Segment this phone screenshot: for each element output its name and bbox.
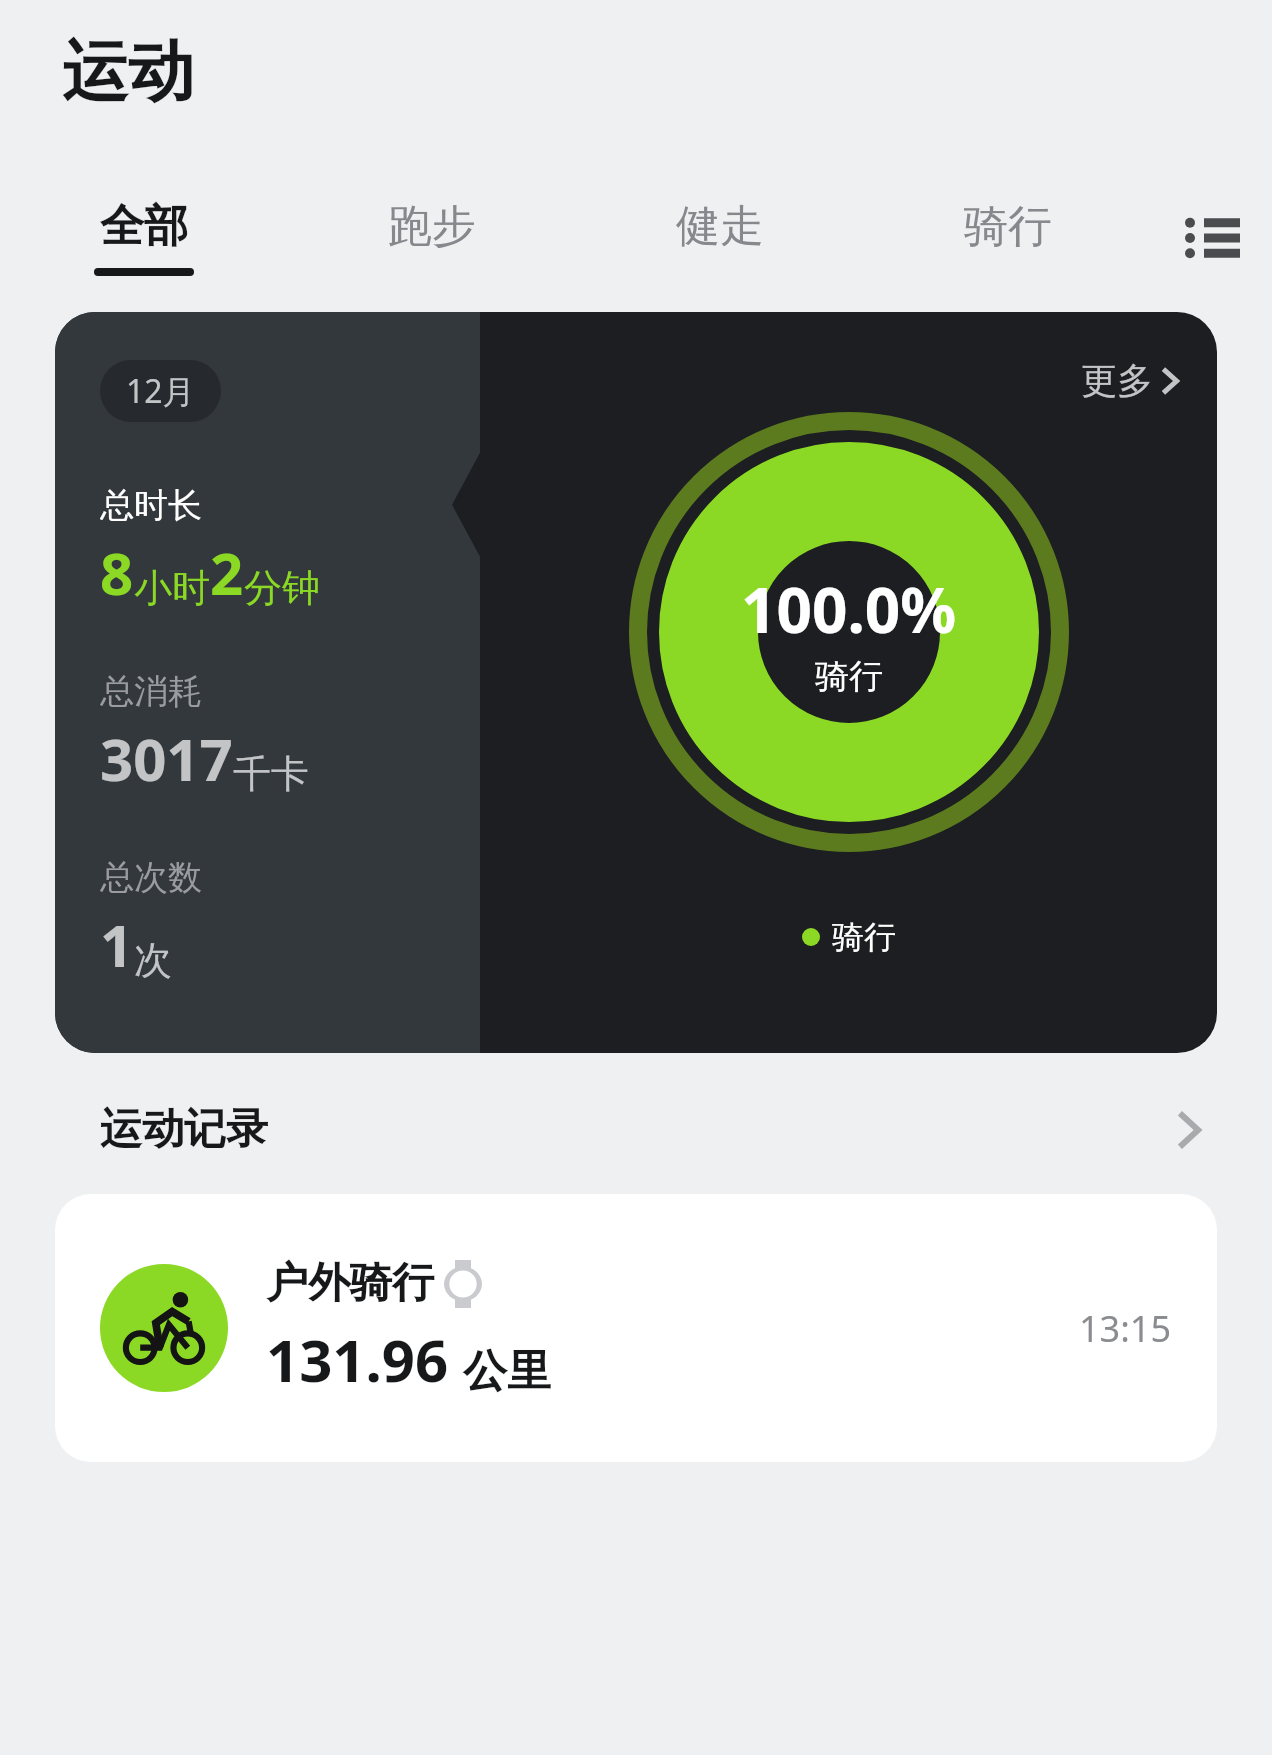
staticText: 骑行 [964,199,1052,254]
staticText: 公里 [463,1344,551,1399]
staticText: 13:15 [1079,1304,1172,1353]
staticText: 千卡 [233,750,309,798]
staticText: 1 [100,905,134,984]
staticText: 运动记录 [100,1103,268,1156]
staticText: 总次数 [100,856,202,899]
button[interactable]: 健走 [576,193,864,282]
button[interactable]: 列表 [1152,198,1272,278]
staticText: 131.96 [266,1320,449,1399]
button[interactable]: 更多 [1075,352,1187,409]
button[interactable]: 骑行 [864,193,1152,282]
staticText: 健走 [676,199,764,254]
staticText: 8 [100,533,134,612]
button[interactable]: 12月 [100,360,221,422]
button[interactable]: 运动记录 [0,1093,1272,1166]
staticText: 户外骑行 [266,1257,434,1310]
button[interactable]: 跑步 [288,193,576,282]
staticText: 跑步 [388,199,476,254]
staticText: 小时 [134,564,210,612]
staticText: 运动 [62,30,194,113]
staticText: 2 [210,533,244,612]
staticText: 全部 [100,199,188,254]
staticText: 次 [134,936,172,984]
staticText: 骑行 [815,655,883,698]
button[interactable]: 12月 [55,312,1217,1053]
staticText: 骑行 [832,917,896,957]
staticText: 总时长 [100,484,202,527]
button[interactable]: 户外骑行 [55,1194,1217,1462]
staticText: 3017 [100,719,233,798]
staticText: 12月 [126,369,195,413]
staticText: 更多 [1081,358,1153,403]
button[interactable]: 全部 [0,193,288,282]
staticText: 分钟 [244,564,320,612]
staticText: 100.0% [741,567,957,651]
staticText: 总消耗 [100,670,202,713]
